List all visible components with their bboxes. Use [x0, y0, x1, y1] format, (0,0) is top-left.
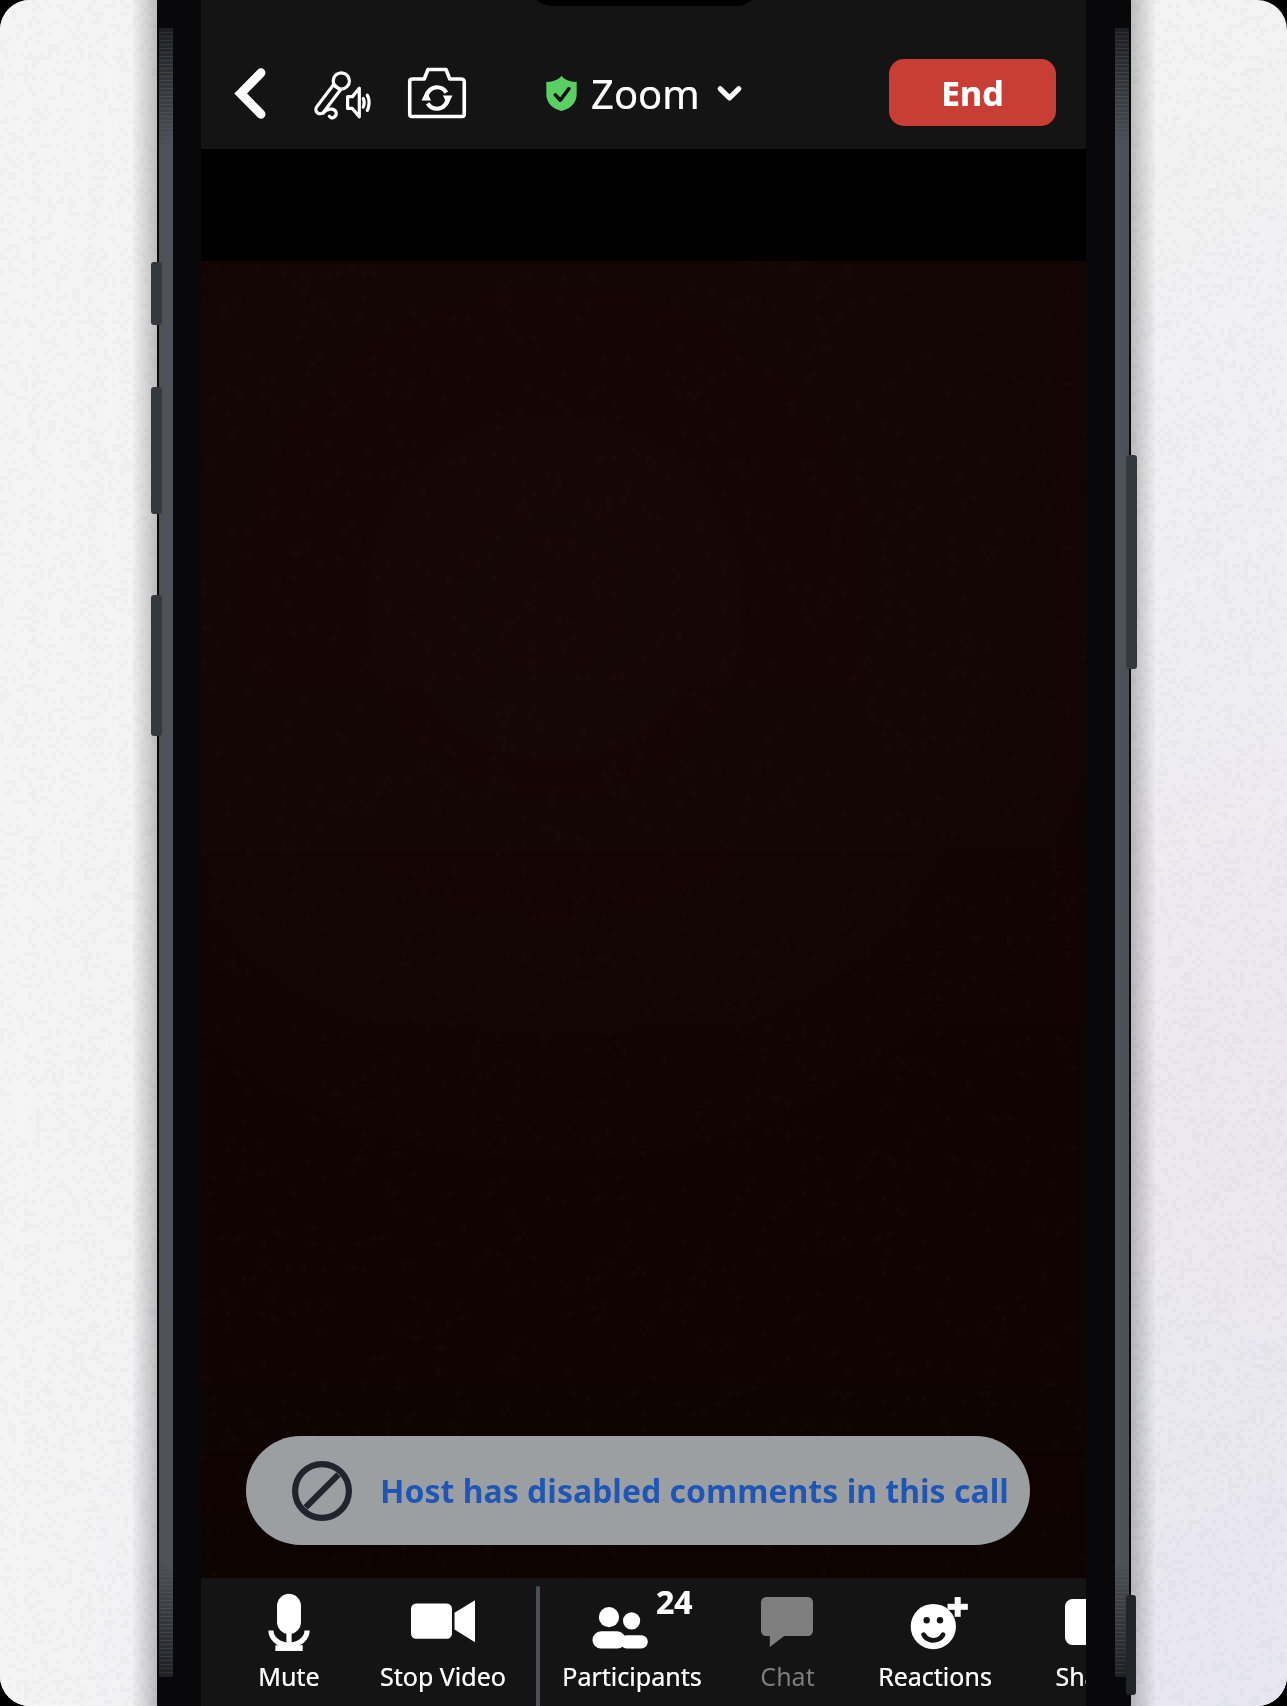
- staticText: Share: [1055, 1659, 1086, 1693]
- staticText: Mute: [258, 1659, 320, 1693]
- staticText: Chat: [760, 1659, 815, 1693]
- button[interactable]: Back: [212, 55, 288, 131]
- button[interactable]: End: [889, 59, 1056, 126]
- staticText: 24: [656, 1580, 693, 1624]
- button[interactable]: Mute: [219, 1578, 359, 1706]
- button[interactable]: Chat: [717, 1578, 857, 1706]
- staticText: Reactions: [878, 1659, 992, 1693]
- button[interactable]: Stop Video: [368, 1578, 518, 1706]
- staticText: End: [941, 70, 1004, 116]
- button[interactable]: Zoom meeting options: [546, 53, 740, 133]
- staticText: Participants: [562, 1659, 702, 1693]
- button[interactable]: Switch camera: [397, 53, 477, 133]
- staticText: Host has disabled comments in this call: [380, 1469, 1009, 1513]
- staticText: Zoom: [591, 66, 700, 120]
- button[interactable]: Share: [1019, 1578, 1086, 1706]
- button[interactable]: Host has disabled comments in this call: [246, 1436, 1030, 1545]
- button[interactable]: 24: [552, 1578, 712, 1706]
- button[interactable]: Mute audio: [304, 53, 384, 133]
- button[interactable]: Reactions: [860, 1578, 1010, 1706]
- staticText: Stop Video: [380, 1659, 506, 1693]
